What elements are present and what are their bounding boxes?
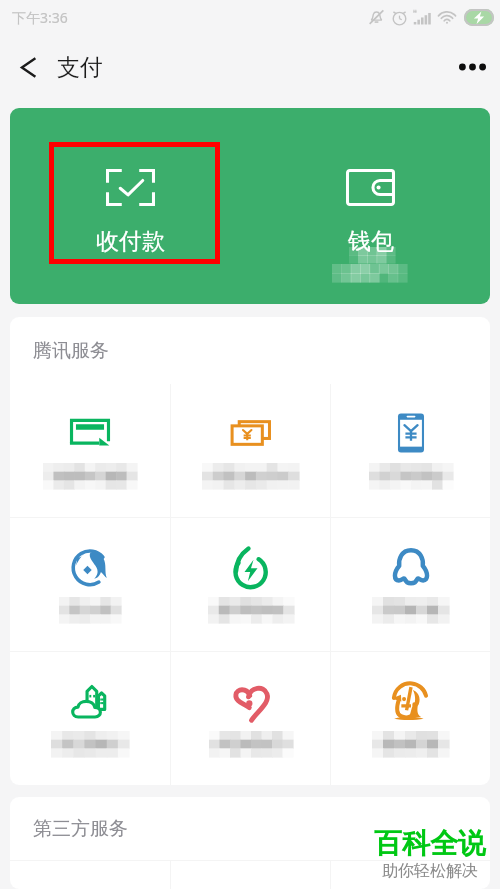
staticText: 收付款 xyxy=(96,227,165,256)
button[interactable] xyxy=(10,652,170,785)
staticText: 腾讯服务 xyxy=(33,339,109,363)
button[interactable] xyxy=(171,652,330,785)
staticText: 支付 xyxy=(57,53,103,82)
button[interactable]: More options xyxy=(445,49,500,85)
staticText: 助你轻松解决 xyxy=(382,861,478,881)
button[interactable] xyxy=(331,384,490,517)
button[interactable] xyxy=(331,652,490,785)
button[interactable]: Back xyxy=(0,43,113,92)
other: Back xyxy=(21,57,36,78)
staticText: 钱包 xyxy=(348,227,394,256)
button[interactable] xyxy=(171,518,330,651)
button[interactable]: 收付款 xyxy=(96,169,165,256)
staticText: 第三方服务 xyxy=(33,817,128,841)
staticText: 下午3:36 xyxy=(12,8,68,27)
button[interactable] xyxy=(10,384,170,517)
button[interactable] xyxy=(10,518,170,651)
button[interactable] xyxy=(171,384,330,517)
button[interactable] xyxy=(331,518,490,651)
button[interactable]: 钱包 xyxy=(346,169,395,256)
staticText: 百科全说 xyxy=(374,826,486,861)
button[interactable] xyxy=(331,861,490,889)
